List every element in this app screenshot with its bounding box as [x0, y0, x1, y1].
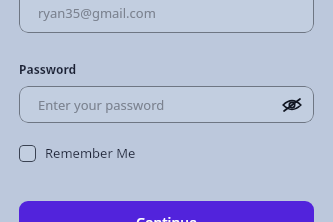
button[interactable]: Continue	[19, 201, 314, 222]
button[interactable]: Show password	[278, 91, 306, 119]
button[interactable]: Remember Me	[19, 144, 136, 162]
staticText: Continue	[136, 213, 197, 222]
button[interactable]: ryan35@gmail.com	[19, 0, 314, 33]
button[interactable]: Enter your password	[19, 86, 314, 123]
staticText: Password	[19, 61, 77, 77]
staticText: Remember Me	[45, 144, 136, 162]
staticText: Enter your password	[38, 96, 165, 114]
staticText: ryan35@gmail.com	[38, 4, 156, 22]
